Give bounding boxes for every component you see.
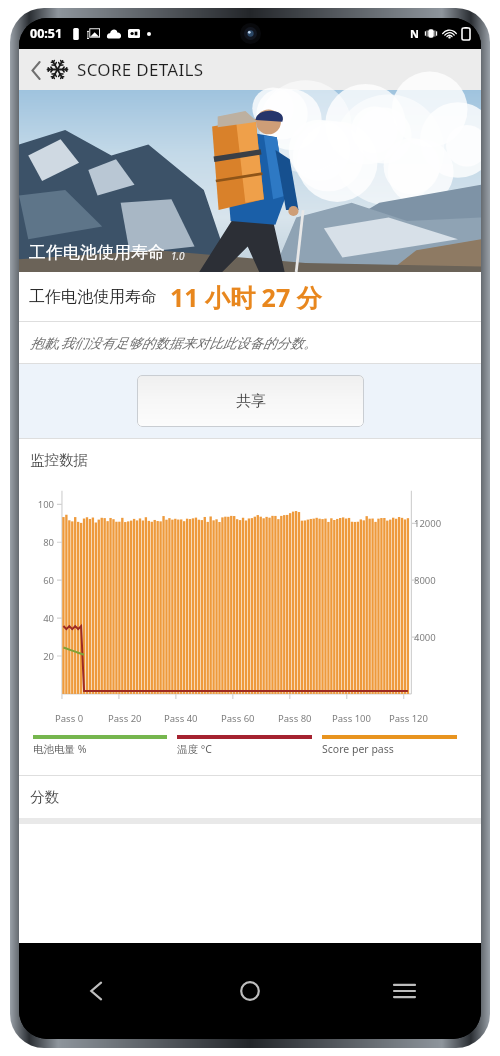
staticText: 共享 — [236, 392, 266, 411]
staticText: 4000 — [414, 631, 436, 644]
staticText: N — [410, 26, 419, 41]
staticText: 11 小时 27 分 — [170, 280, 322, 314]
staticText: 12000 — [414, 517, 442, 530]
staticText: Pass 20 — [108, 712, 142, 725]
staticText: 电池电量 % — [33, 742, 87, 756]
staticText: Pass 120 — [389, 712, 428, 725]
staticText: 60 — [19, 574, 54, 587]
button[interactable]: Home — [173, 943, 327, 1039]
staticText: 00:51 — [30, 25, 63, 42]
staticText: Pass 100 — [332, 712, 371, 725]
staticText: 20 — [19, 650, 54, 663]
button[interactable]: Back — [25, 52, 47, 88]
staticText: 8000 — [414, 574, 436, 587]
staticText: 监控数据 — [30, 451, 88, 469]
staticText: Score per pass — [322, 742, 394, 756]
staticText: Pass 40 — [164, 712, 198, 725]
staticText: 分数 — [30, 788, 59, 806]
staticText: Pass 80 — [278, 712, 312, 725]
staticText: 温度 °C — [177, 742, 212, 756]
staticText: 100 — [19, 498, 54, 511]
staticText: Pass 0 — [55, 712, 84, 725]
button[interactable]: 共享 — [137, 375, 364, 427]
staticText: 工作电池使用寿命 — [29, 242, 165, 263]
staticText: 抱歉,我们没有足够的数据来对比此设备的分数。 — [30, 334, 317, 352]
staticText: 1.0 — [171, 249, 185, 263]
staticText: 工作电池使用寿命 — [29, 287, 157, 307]
staticText: SCORE DETAILS — [77, 58, 204, 81]
staticText: Pass 60 — [221, 712, 255, 725]
button[interactable]: Back — [19, 943, 173, 1039]
staticText: 40 — [19, 612, 54, 625]
staticText: 80 — [19, 536, 54, 549]
button[interactable]: Recent apps — [327, 943, 481, 1039]
